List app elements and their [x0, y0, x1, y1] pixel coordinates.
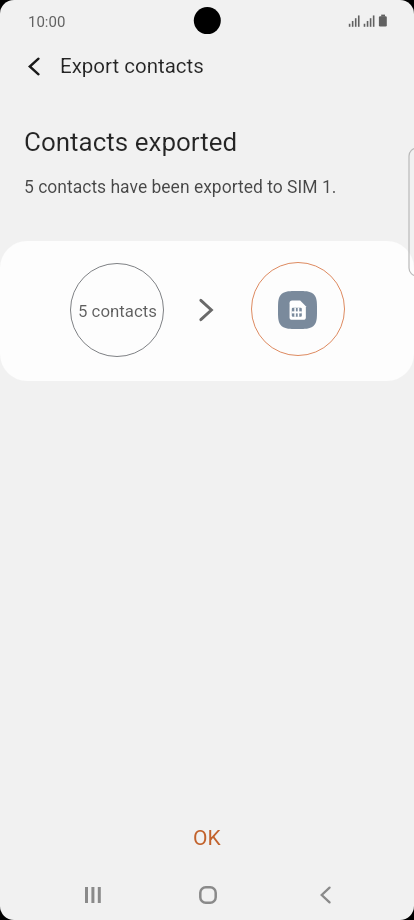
staticText: Export contacts [60, 54, 204, 78]
button[interactable]: Navigate up [10, 42, 58, 90]
staticText: 10:00 [28, 13, 66, 31]
staticText: 5 contacts [78, 301, 157, 321]
staticText: 5 contacts have been exported to SIM 1. [24, 177, 337, 198]
staticText: Contacts exported [24, 127, 238, 157]
button[interactable]: Home [184, 871, 232, 919]
button[interactable]: Recent apps [69, 871, 117, 919]
staticText: OK [193, 826, 221, 851]
button[interactable]: Back [301, 871, 349, 919]
button[interactable]: OK [163, 819, 251, 858]
